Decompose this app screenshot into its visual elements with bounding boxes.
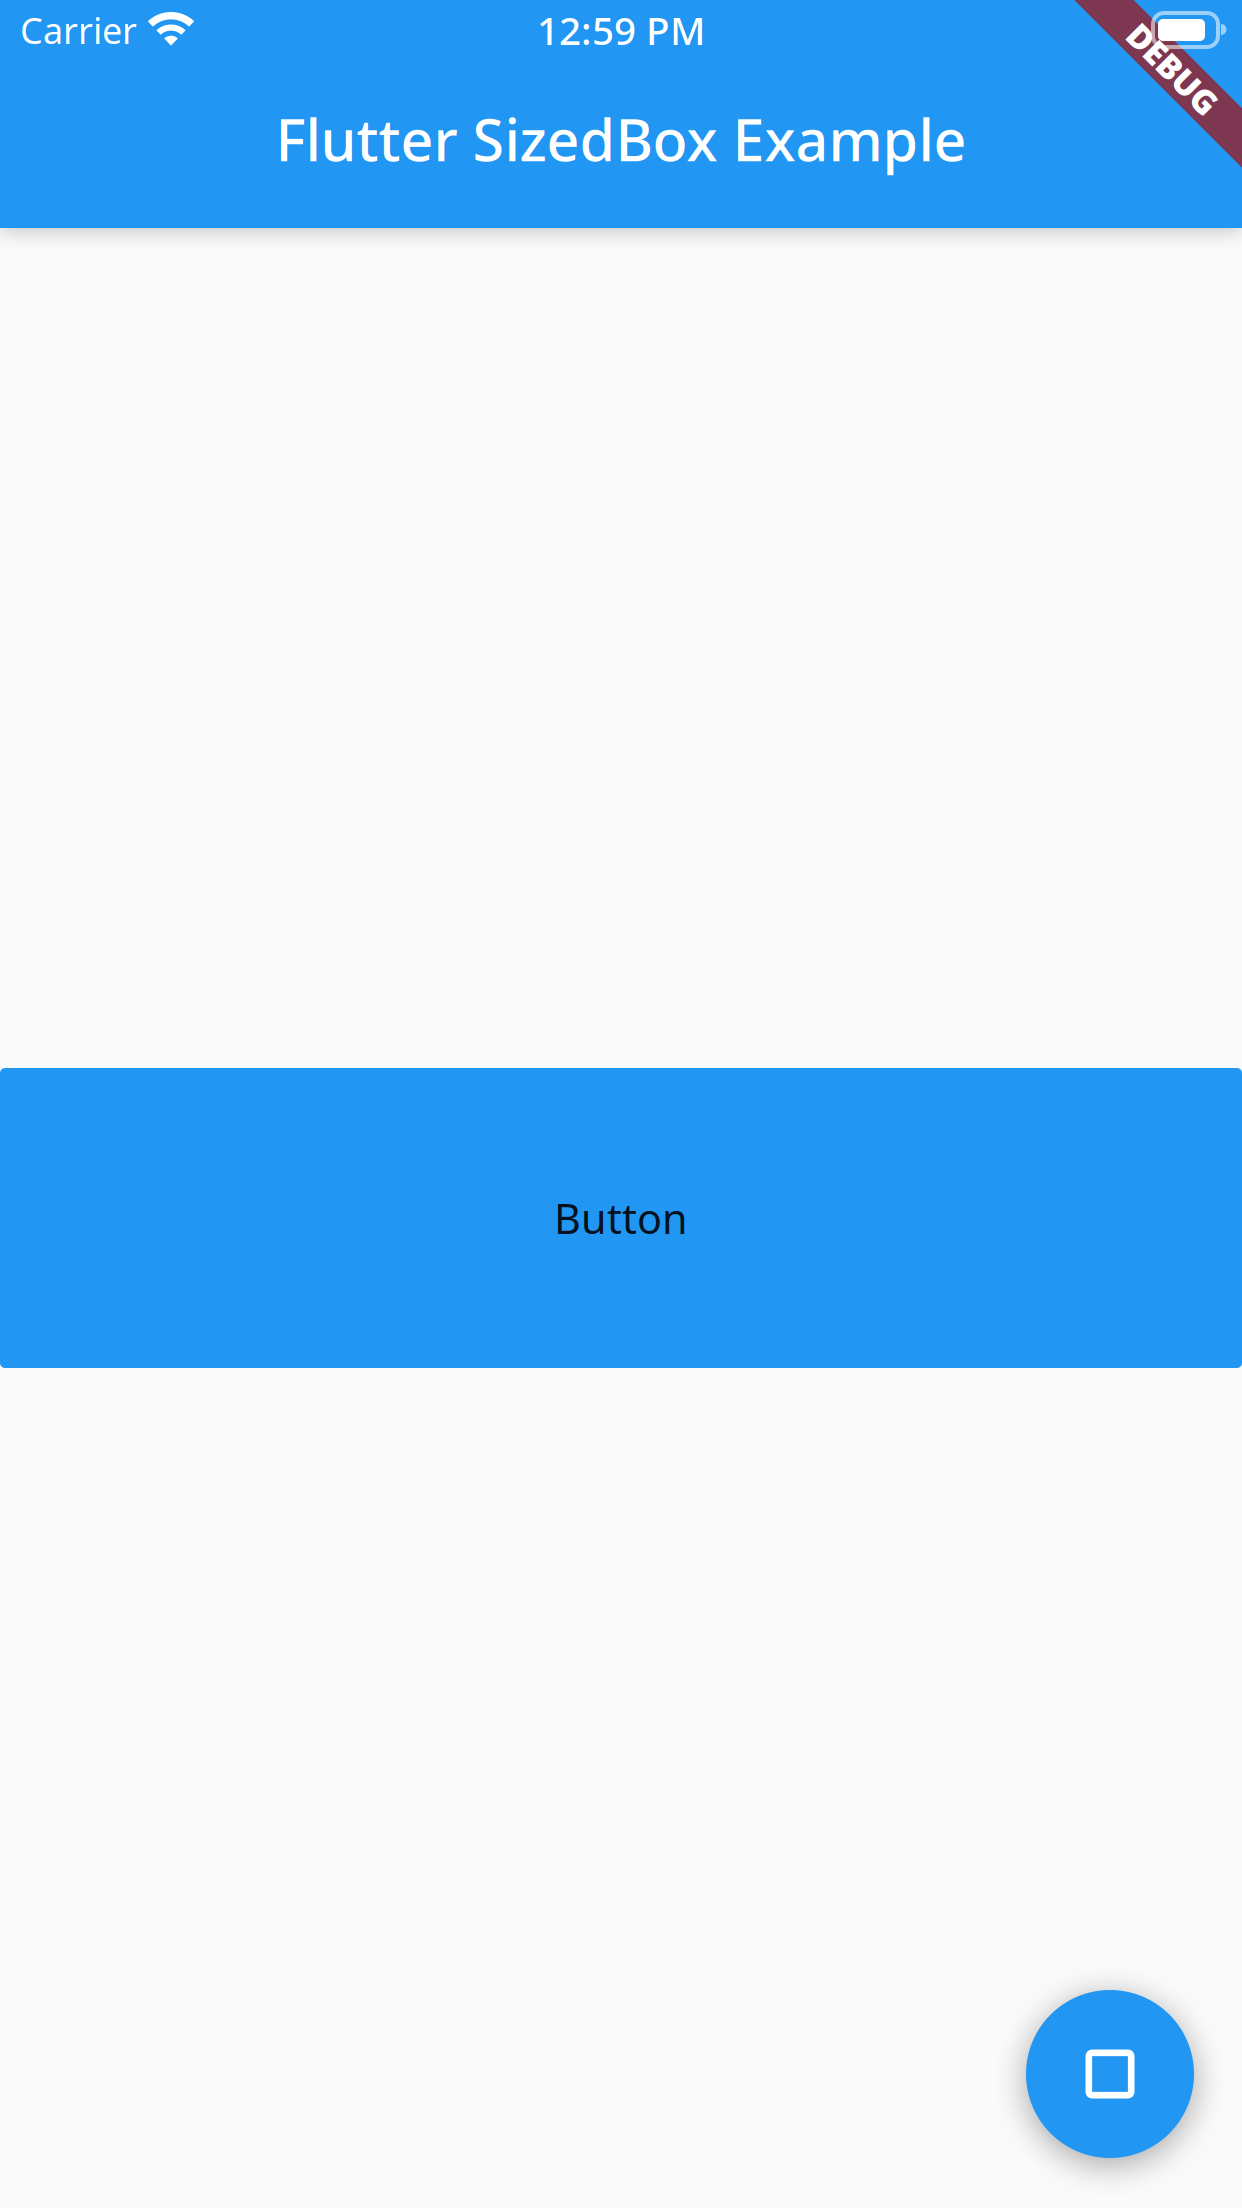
button[interactable]: Button — [0, 1068, 1242, 1368]
staticText: Button — [554, 1191, 688, 1245]
staticText: Carrier — [20, 6, 137, 54]
staticText: 12:59 PM — [537, 4, 705, 56]
staticText: Flutter SizedBox Example — [275, 101, 966, 177]
button[interactable]: Stop — [1026, 1990, 1194, 2158]
staticText: DEBUG — [1116, 47, 1230, 91]
